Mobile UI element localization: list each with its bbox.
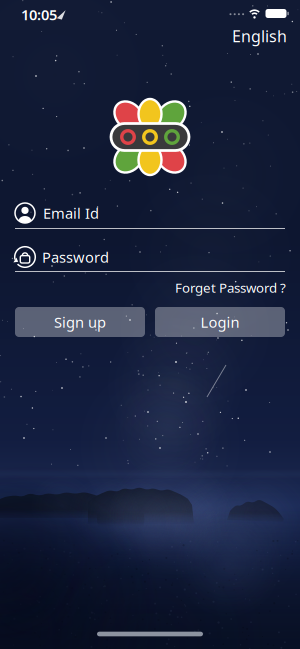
- staticText: Login: [200, 312, 239, 332]
- staticText: Password: [42, 247, 109, 267]
- staticText: Email Id: [43, 203, 99, 223]
- staticText: Forget Password ?: [175, 279, 286, 296]
- staticText: Sign up: [54, 312, 106, 332]
- staticText: English: [232, 25, 287, 47]
- staticText: 10:05: [21, 5, 57, 24]
